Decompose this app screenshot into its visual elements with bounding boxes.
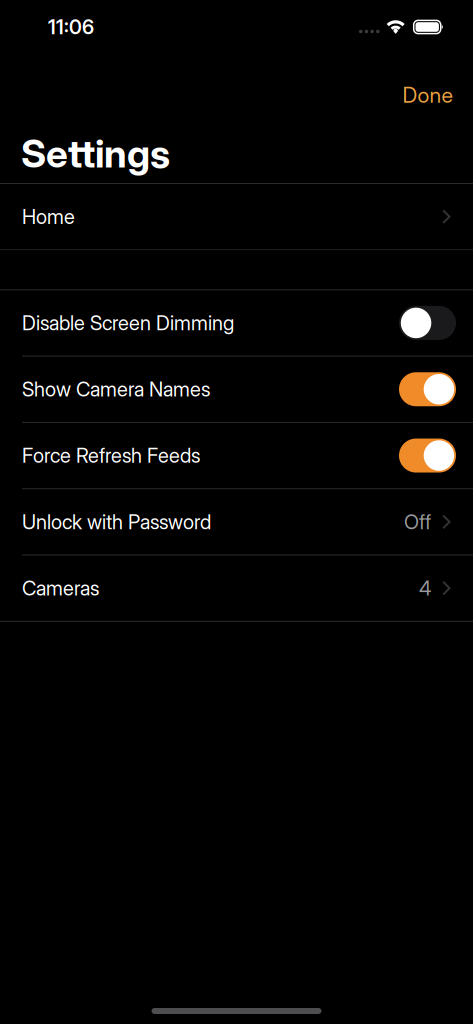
button[interactable]: Done <box>382 69 473 117</box>
button[interactable]: Show Camera Names <box>0 357 473 422</box>
staticText: Home <box>22 205 75 229</box>
staticText: Done <box>402 82 452 108</box>
button[interactable]: Home <box>0 184 473 249</box>
staticText: Disable Screen Dimming <box>22 311 234 335</box>
button[interactable]: Disable Screen Dimming <box>0 290 473 356</box>
staticText: Off <box>404 510 431 534</box>
staticText: 11:06 <box>48 15 94 39</box>
staticText: Show Camera Names <box>22 377 210 401</box>
button[interactable]: Unlock with Password <box>0 489 473 554</box>
staticText: Cameras <box>22 576 99 600</box>
button[interactable]: Cameras <box>0 555 473 621</box>
staticText: Settings <box>21 130 170 177</box>
staticText: Unlock with Password <box>22 510 211 534</box>
staticText: 4 <box>419 576 431 600</box>
staticText: Force Refresh Feeds <box>22 443 200 468</box>
button[interactable]: Force Refresh Feeds <box>0 423 473 488</box>
